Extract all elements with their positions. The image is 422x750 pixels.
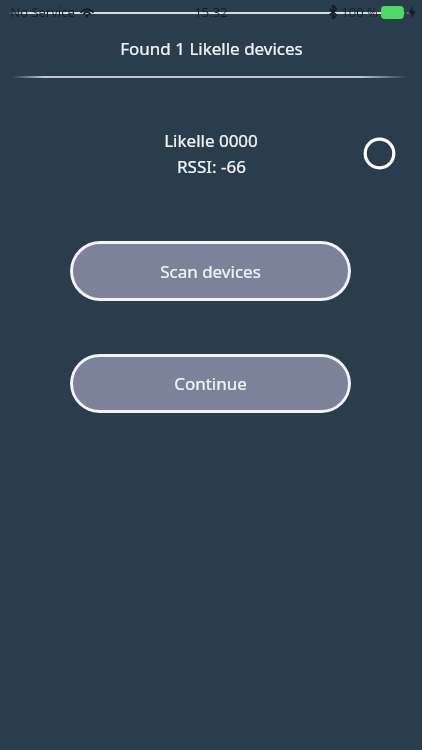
- staticText: Found 1 Likelle devices: [120, 37, 303, 60]
- staticText: 15.32: [194, 3, 228, 21]
- staticText: Scan devices: [160, 260, 261, 283]
- staticText: Continue: [174, 372, 247, 395]
- other: Select device: [363, 137, 396, 170]
- staticText: No Service: [10, 3, 75, 21]
- button[interactable]: Scan devices: [70, 241, 351, 301]
- staticText: Likelle 0000: [164, 129, 258, 152]
- staticText: 100 %: [341, 3, 378, 21]
- button[interactable]: Likelle 0000: [0, 122, 422, 184]
- staticText: RSSI: -66: [177, 155, 246, 178]
- button[interactable]: Continue: [70, 354, 351, 413]
